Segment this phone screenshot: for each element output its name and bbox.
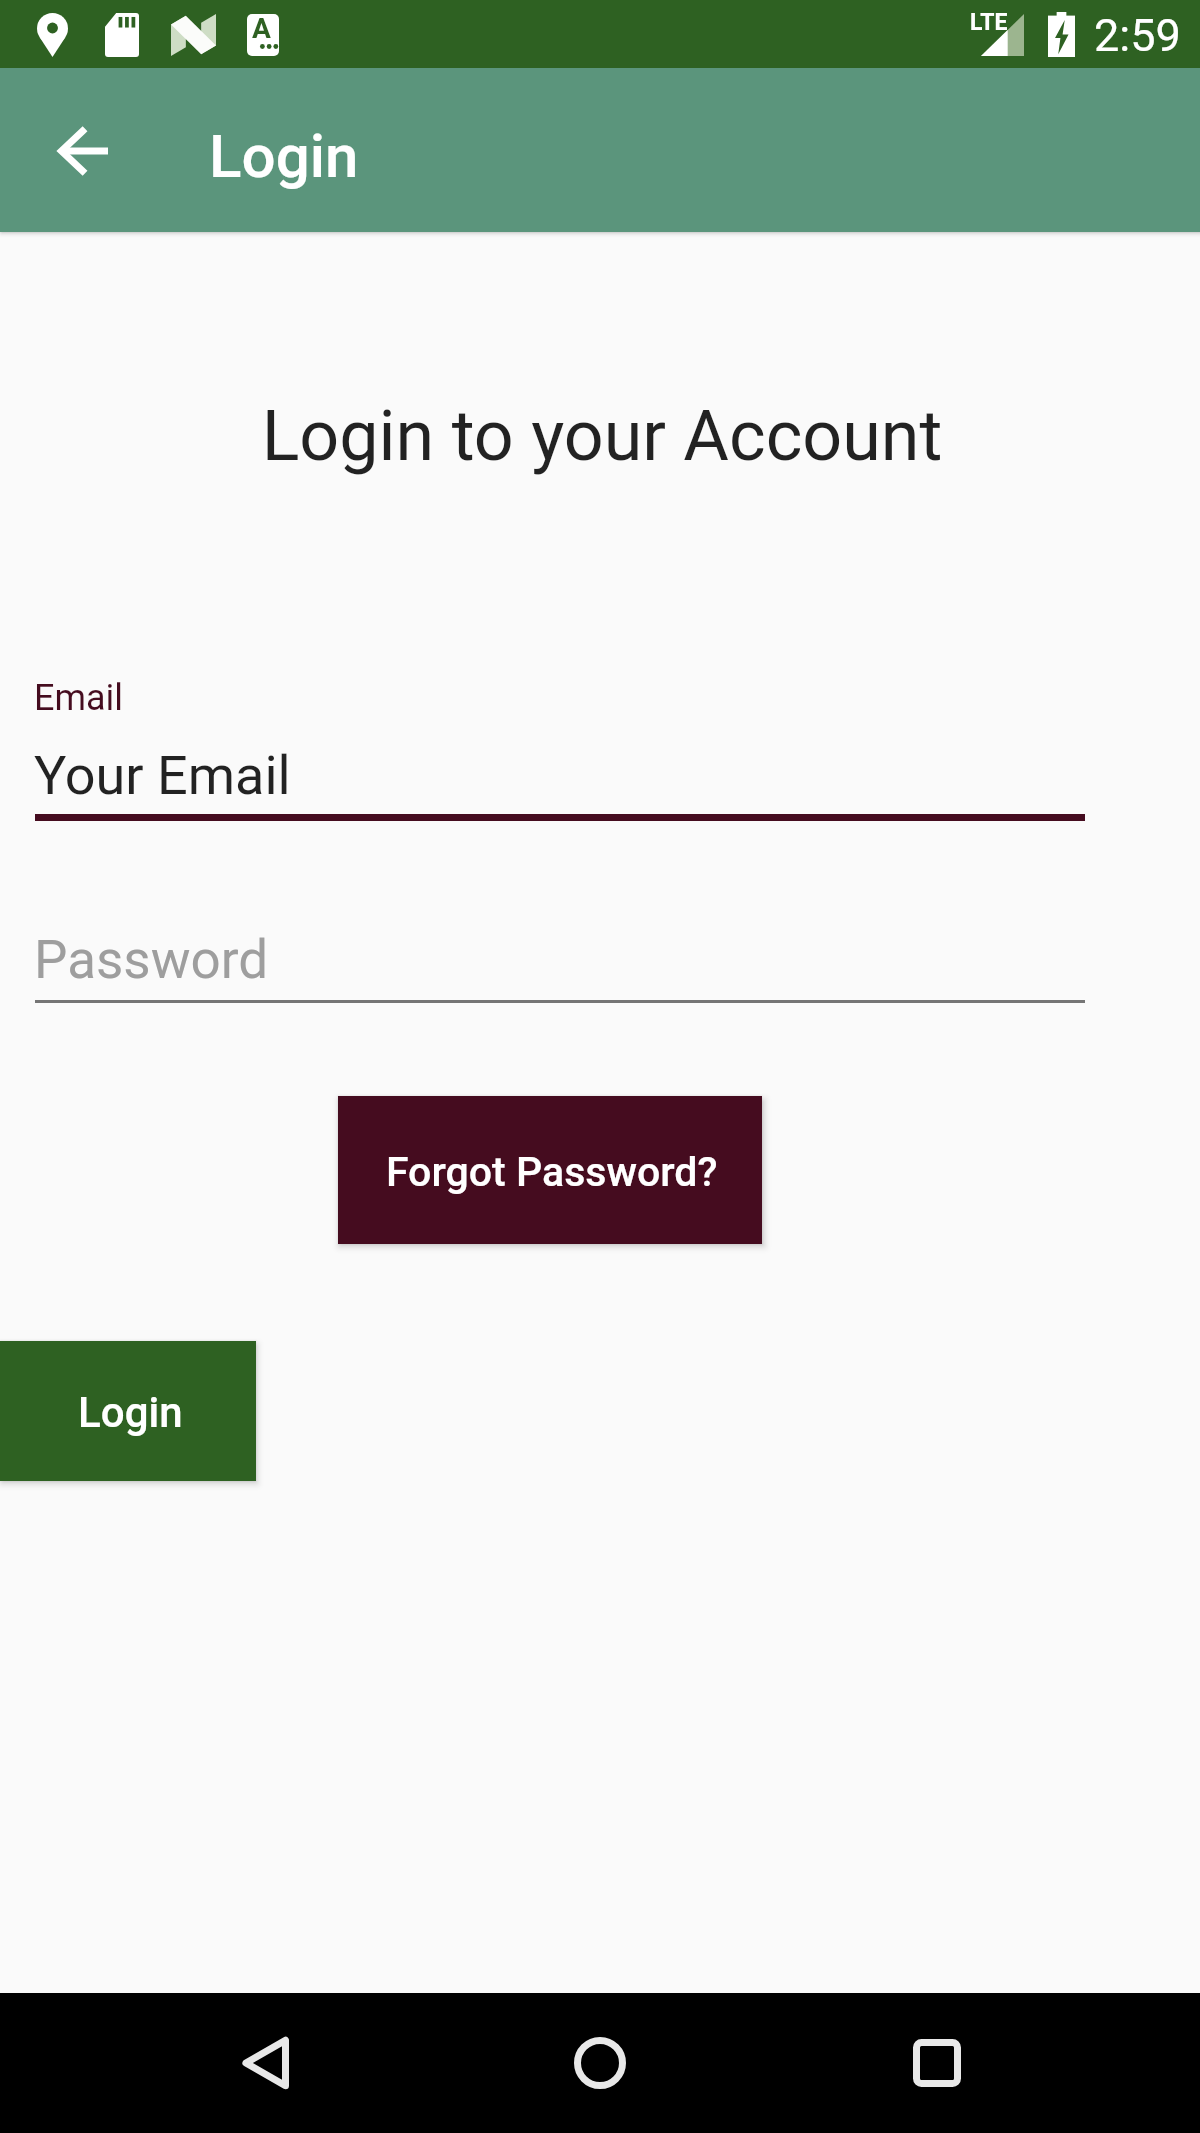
staticText: Your Email	[34, 744, 291, 807]
staticText: Forgot Password?	[386, 1148, 718, 1196]
staticText: A	[252, 14, 271, 45]
button[interactable]: Home	[540, 2003, 660, 2123]
staticText: Login	[78, 1388, 183, 1437]
button[interactable]: Login	[0, 1341, 256, 1481]
staticText: Login	[209, 121, 359, 191]
staticText: Email	[34, 677, 124, 719]
button[interactable]: Forgot Password?	[338, 1096, 762, 1244]
staticText: LTE	[970, 9, 1008, 36]
button[interactable]: Back	[205, 2003, 325, 2123]
button[interactable]: Password	[35, 920, 1085, 1003]
button[interactable]: Back	[24, 92, 142, 210]
staticText: 2:59	[1094, 9, 1181, 62]
button[interactable]: Email	[35, 668, 1085, 821]
button[interactable]: Recent apps	[877, 2003, 997, 2123]
staticText: Password	[34, 929, 269, 991]
staticText: Login to your Account	[2, 395, 1200, 477]
